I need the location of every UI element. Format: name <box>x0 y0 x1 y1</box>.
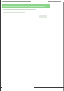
button[interactable]: Header <box>1 0 63 3</box>
button[interactable]: Highlighted title <box>2 4 50 8</box>
